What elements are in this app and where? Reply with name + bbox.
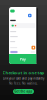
staticText: No fees. No waiting. <box>9 82 38 85</box>
staticText: Get the app <box>14 90 32 93</box>
button[interactable]: Pay <box>9 54 36 64</box>
staticText: Link your card and pay instantly <box>3 77 44 80</box>
staticText: Checkout in one tap <box>2 70 44 75</box>
staticText: Pay <box>20 56 26 62</box>
button[interactable]: Get the app <box>13 89 34 94</box>
